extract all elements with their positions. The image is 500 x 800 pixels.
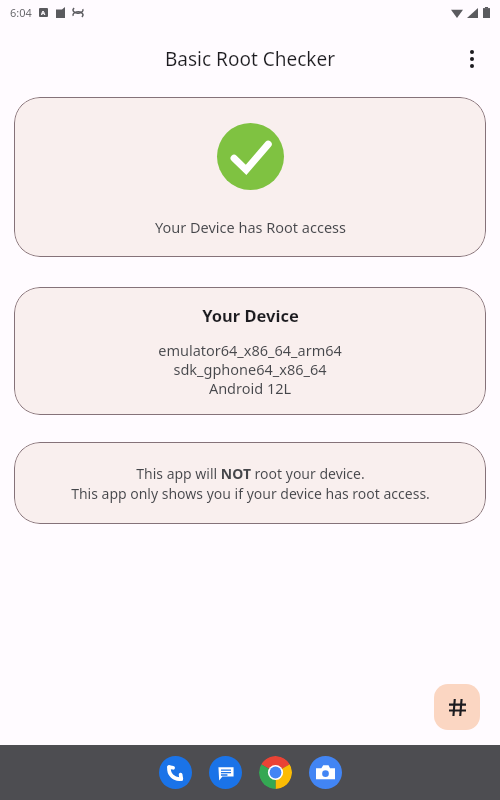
button[interactable]: This app will NOT root your device. This… bbox=[14, 442, 486, 524]
staticText: A bbox=[41, 9, 46, 17]
button[interactable]: Camera bbox=[309, 756, 342, 789]
button[interactable]: Phone bbox=[159, 756, 192, 789]
staticText: This app will NOT root your device. This… bbox=[71, 464, 430, 503]
button[interactable]: Chrome bbox=[259, 756, 292, 789]
button[interactable]: Your Device has Root access bbox=[14, 97, 486, 257]
button[interactable]: Your Device bbox=[14, 287, 486, 415]
staticText: emulator64_x86_64_arm64 sdk_gphone64_x86… bbox=[158, 340, 342, 399]
staticText: 6:04 bbox=[10, 5, 32, 20]
staticText: Basic Root Checker bbox=[165, 46, 335, 72]
button[interactable]: More options bbox=[450, 37, 494, 81]
button[interactable]: Hash bbox=[434, 684, 480, 730]
button[interactable]: Messages bbox=[209, 756, 242, 789]
staticText: Your Device bbox=[202, 304, 299, 326]
staticText: Your Device has Root access bbox=[155, 217, 346, 237]
